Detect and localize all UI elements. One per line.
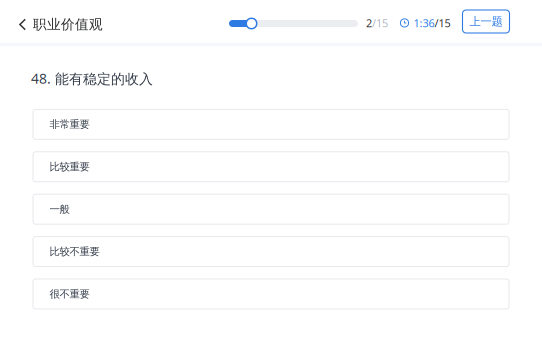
button[interactable]: 一般 [32, 194, 509, 225]
button[interactable]: 比较不重要 [32, 236, 509, 267]
staticText: 比较不重要 [49, 245, 99, 258]
button[interactable]: 非常重要 [32, 109, 509, 140]
staticText: 非常重要 [49, 118, 89, 131]
staticText: 很不重要 [49, 287, 89, 300]
button[interactable]: 比较重要 [32, 151, 509, 182]
staticText: 48. 能有稳定的收入 [31, 69, 153, 88]
staticText: 职业价值观 [33, 16, 103, 33]
staticText: 比较重要 [49, 160, 89, 173]
button[interactable]: 职业价值观 [0, 3, 113, 46]
staticText: /15 [434, 15, 450, 30]
staticText: /15 [372, 15, 388, 30]
staticText: 1:36 [413, 15, 434, 30]
button[interactable]: 上一题 [462, 10, 509, 33]
staticText: 2 [366, 15, 372, 30]
staticText: 上一题 [469, 14, 502, 29]
button[interactable]: 很不重要 [32, 278, 509, 309]
staticText: 一般 [49, 203, 69, 216]
